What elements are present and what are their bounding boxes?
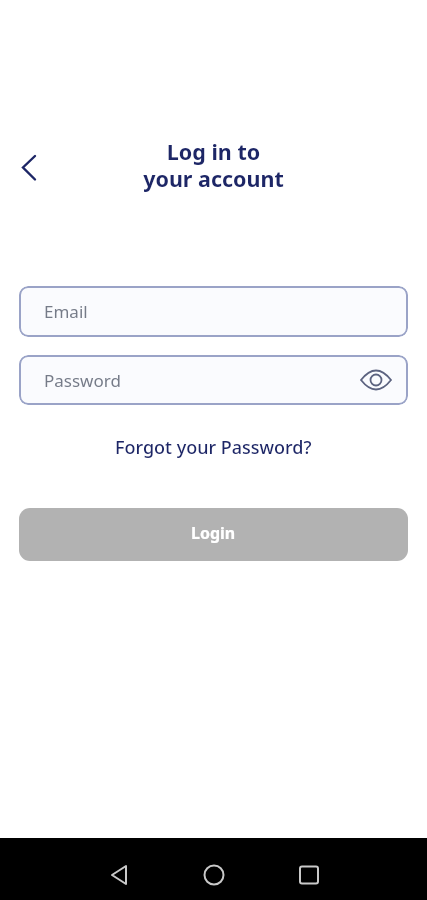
button[interactable] <box>261 855 356 895</box>
button[interactable]: Password <box>19 355 408 405</box>
staticText: Email <box>44 300 88 323</box>
staticText: Login <box>191 522 236 544</box>
staticText: Password <box>44 369 121 392</box>
button[interactable]: Forgot your Password? <box>115 435 312 460</box>
button[interactable] <box>360 364 392 396</box>
button[interactable] <box>8 146 52 190</box>
staticText: Log in to your account <box>0 137 427 193</box>
button[interactable]: Email <box>19 286 408 337</box>
button[interactable] <box>71 855 166 895</box>
button[interactable]: Login <box>19 508 408 561</box>
staticText: Forgot your Password? <box>115 435 312 460</box>
button[interactable] <box>166 855 261 895</box>
